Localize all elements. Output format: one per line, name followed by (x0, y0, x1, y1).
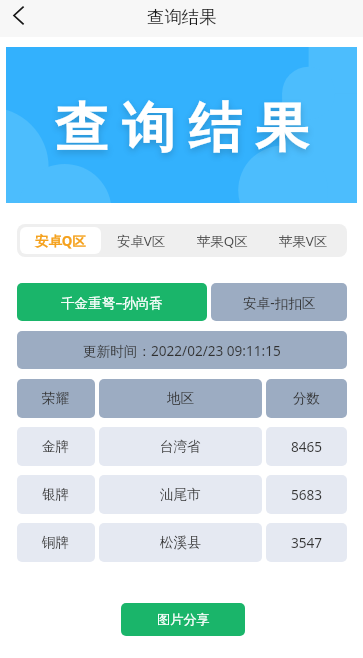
staticText: 8465 (291, 437, 323, 456)
staticText: 台湾省 (160, 438, 201, 455)
button[interactable]: 地区 (99, 379, 262, 418)
staticText: 苹果Q区 (197, 232, 248, 250)
staticText: 松溪县 (160, 534, 201, 551)
button[interactable]: 安卓Q区 (20, 227, 101, 254)
staticText: 查 询 结 果 (55, 89, 309, 161)
button[interactable]: 汕尾市 (99, 475, 262, 514)
staticText: 金牌 (42, 438, 70, 455)
staticText: 汕尾市 (160, 486, 201, 503)
staticText: 5683 (291, 485, 323, 504)
button[interactable]: 松溪县 (99, 523, 262, 562)
button[interactable]: 千金重弩–孙尚香 (17, 283, 207, 321)
button[interactable]: 更新时间：2022/02/23 09:11:15 (17, 331, 347, 369)
button[interactable]: 安卓V区 (101, 227, 182, 254)
button[interactable]: 安卓-扣扣区 (211, 283, 347, 321)
button[interactable]: 银牌 (17, 475, 95, 514)
staticText: 安卓-扣扣区 (243, 293, 316, 312)
button[interactable]: 图片分享 (121, 603, 245, 636)
button[interactable]: 荣耀 (17, 379, 95, 418)
button[interactable]: 苹果Q区 (182, 227, 263, 254)
staticText: 铜牌 (42, 534, 70, 551)
button[interactable]: Back (0, 0, 37, 37)
button[interactable]: 苹果V区 (263, 227, 344, 254)
staticText: 安卓Q区 (35, 232, 86, 250)
staticText: 苹果V区 (279, 232, 328, 250)
button[interactable]: 分数 (266, 379, 347, 418)
staticText: 分数 (293, 390, 321, 407)
staticText: 安卓V区 (117, 232, 166, 250)
staticText: 3547 (291, 533, 323, 552)
button[interactable]: 8465 (266, 427, 347, 466)
staticText: 查询结果 (147, 6, 217, 28)
staticText: 荣耀 (42, 390, 70, 407)
button[interactable]: 铜牌 (17, 523, 95, 562)
staticText: 银牌 (42, 486, 70, 503)
staticText: 千金重弩–孙尚香 (61, 293, 163, 312)
button[interactable]: 台湾省 (99, 427, 262, 466)
button[interactable]: 5683 (266, 475, 347, 514)
button[interactable]: 3547 (266, 523, 347, 562)
button[interactable]: 金牌 (17, 427, 95, 466)
staticText: 地区 (167, 390, 195, 407)
staticText: 图片分享 (157, 611, 210, 628)
staticText: 更新时间：2022/02/23 09:11:15 (83, 341, 281, 360)
